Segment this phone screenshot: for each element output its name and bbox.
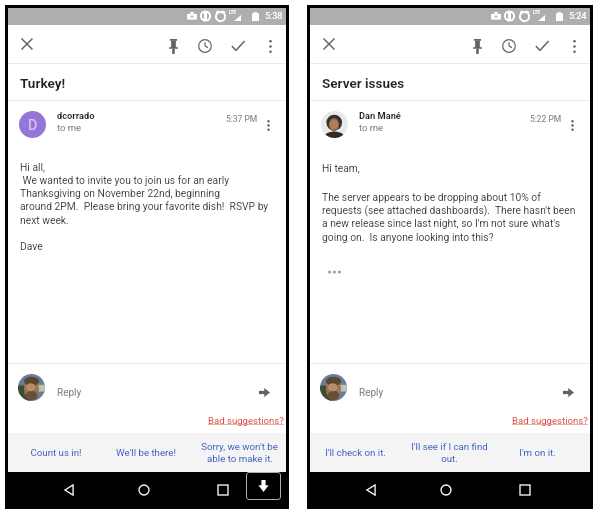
button[interactable]: Pin (159, 32, 187, 60)
staticText: 5:24 (569, 11, 587, 22)
staticText: 5:22 PM (530, 114, 562, 124)
staticText: Thanksgiving on November 22nd, beginning (20, 187, 220, 199)
button[interactable]: More options (256, 32, 284, 60)
button[interactable]: Bad suggestions? (207, 413, 285, 428)
staticText: I'll see if I can find (411, 441, 488, 452)
button[interactable]: Snooze (191, 32, 219, 60)
button[interactable]: Close (315, 30, 343, 58)
staticText: Bad suggestions? (208, 415, 284, 426)
button[interactable]: Sorry, we won't be (193, 433, 285, 472)
button[interactable]: Sender avatar (19, 111, 46, 138)
staticText: a new release since last night, so I'm n… (322, 217, 560, 229)
staticText: 5:37 PM (226, 114, 258, 124)
staticText: D (28, 117, 38, 133)
button[interactable]: Recents (205, 472, 241, 507)
staticText: I'll check on it. (325, 447, 386, 458)
button[interactable]: Back (353, 472, 389, 507)
staticText: dcorrado (57, 110, 95, 121)
staticText: Turkey! (20, 75, 66, 91)
staticText: The server appears to be dropping about … (322, 191, 541, 203)
staticText: Sorry, we won't be (201, 441, 278, 452)
staticText: 5:38 (265, 11, 283, 22)
button[interactable]: Pin (463, 32, 491, 60)
button[interactable]: Download (246, 472, 281, 500)
button[interactable]: Message options (564, 112, 580, 138)
button[interactable]: We'll be there! (100, 433, 192, 472)
staticText: Dan Mané (359, 110, 401, 121)
button[interactable]: Reply (310, 363, 590, 406)
staticText: Count us in! (30, 447, 82, 458)
staticText: around 2PM. Please bring your favorite d… (20, 200, 269, 212)
button[interactable]: Close (13, 30, 41, 58)
staticText: able to make it. (207, 453, 273, 464)
staticText: to me (57, 122, 82, 133)
button[interactable]: Bad suggestions? (511, 413, 589, 428)
staticText: We'll be there! (116, 447, 176, 458)
staticText: LTE (533, 10, 541, 15)
button[interactable]: Reply (8, 363, 286, 406)
staticText: Server issues (322, 75, 405, 91)
button[interactable]: I'm on it. (491, 433, 583, 472)
staticText: to me (359, 122, 384, 133)
button[interactable]: Home (428, 472, 464, 507)
staticText: out. (441, 453, 458, 464)
staticText: Bad suggestions? (512, 415, 588, 426)
button[interactable]: Home (126, 472, 162, 507)
button[interactable]: Recents (507, 472, 543, 507)
button[interactable]: Done (528, 32, 556, 60)
staticText: going on. Is anyone looking into this? (322, 231, 494, 243)
staticText: Dave (20, 240, 43, 252)
button[interactable]: Done (224, 32, 252, 60)
button[interactable]: Snooze (495, 32, 523, 60)
button[interactable]: Message options (260, 112, 276, 138)
staticText: requests (see attached dashboards). Ther… (322, 204, 576, 216)
button[interactable]: Back (51, 472, 87, 507)
staticText: Hi all, (20, 161, 46, 173)
button[interactable]: Count us in! (10, 433, 102, 472)
staticText: Hi team, (322, 162, 360, 174)
staticText: Reply (57, 387, 82, 399)
staticText: I'm on it. (519, 447, 556, 458)
staticText: next week. (20, 214, 69, 226)
staticText: Reply (359, 387, 384, 399)
button[interactable]: Sender avatar (321, 111, 348, 138)
button[interactable]: I'll see if I can find (403, 433, 495, 472)
staticText: LTE (229, 10, 237, 15)
button[interactable]: More options (560, 32, 588, 60)
button[interactable]: I'll check on it. (309, 433, 401, 472)
staticText: We wanted to invite you to join us for a… (20, 174, 230, 186)
